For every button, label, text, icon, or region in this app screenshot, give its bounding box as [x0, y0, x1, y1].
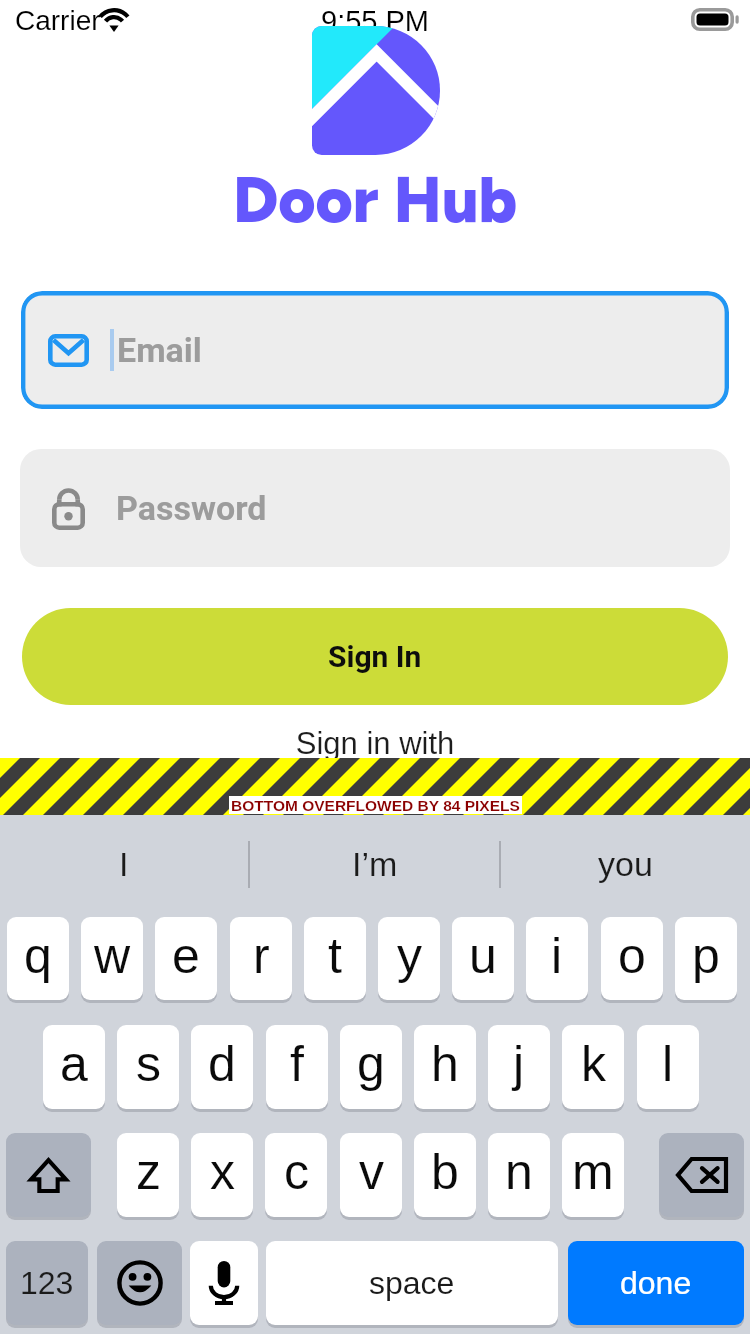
button[interactable]: d	[191, 1025, 253, 1109]
other: Battery	[691, 8, 737, 31]
button[interactable]: y	[378, 917, 440, 1000]
button[interactable]: Shift	[6, 1133, 91, 1217]
other: Wi-Fi	[96, 4, 132, 36]
staticText: Door Hub	[0, 161, 750, 238]
staticText: r	[253, 928, 270, 984]
staticText: h	[431, 1036, 459, 1092]
staticText: k	[581, 1036, 606, 1092]
button[interactable]: u	[452, 917, 514, 1000]
button[interactable]: Email	[21, 291, 729, 409]
staticText: w	[94, 928, 131, 984]
button[interactable]: j	[488, 1025, 550, 1109]
staticText: m	[572, 1144, 614, 1200]
button[interactable]: f	[266, 1025, 328, 1109]
button[interactable]: t	[304, 917, 366, 1000]
staticText: o	[618, 928, 646, 984]
button[interactable]: Password	[20, 449, 730, 567]
staticText: 123	[20, 1265, 74, 1301]
button[interactable]: space	[266, 1241, 558, 1325]
staticText: l	[662, 1036, 674, 1092]
staticText: d	[208, 1036, 236, 1092]
button[interactable]: done	[568, 1241, 744, 1325]
staticText: u	[469, 928, 497, 984]
button[interactable]: k	[562, 1025, 624, 1109]
staticText: c	[284, 1144, 309, 1200]
button[interactable]: z	[117, 1133, 179, 1217]
staticText: n	[505, 1144, 533, 1200]
button[interactable]: q	[7, 917, 69, 1000]
staticText: s	[136, 1036, 161, 1092]
button[interactable]: I’m	[250, 815, 499, 913]
staticText: f	[290, 1036, 304, 1092]
button[interactable]: v	[340, 1133, 402, 1217]
button[interactable]: p	[675, 917, 737, 1000]
staticText: Email	[117, 330, 202, 370]
button[interactable]: Dictate	[190, 1241, 258, 1325]
staticText: Sign In	[328, 639, 422, 674]
staticText: b	[431, 1144, 459, 1200]
button[interactable]: Emoji	[97, 1241, 182, 1325]
button[interactable]: x	[191, 1133, 253, 1217]
button[interactable]: Sign In	[22, 608, 728, 705]
button[interactable]: l	[637, 1025, 699, 1109]
button[interactable]: c	[265, 1133, 327, 1217]
button[interactable]: o	[601, 917, 663, 1000]
staticText: j	[513, 1036, 525, 1092]
staticText: Password	[116, 488, 267, 528]
button[interactable]: a	[43, 1025, 105, 1109]
staticText: I’m	[352, 845, 398, 883]
staticText: Sign in with	[0, 726, 750, 761]
staticText: BOTTOM OVERFLOWED BY 84 PIXELS	[231, 797, 520, 814]
staticText: a	[60, 1036, 88, 1092]
other: Door Hub logo	[312, 26, 440, 155]
staticText: q	[24, 928, 52, 984]
button[interactable]: e	[155, 917, 217, 1000]
button[interactable]: h	[414, 1025, 476, 1109]
button[interactable]: n	[488, 1133, 550, 1217]
staticText: g	[357, 1036, 385, 1092]
button[interactable]: r	[230, 917, 292, 1000]
staticText: x	[210, 1144, 235, 1200]
staticText: Carrier	[15, 5, 101, 36]
staticText: v	[359, 1144, 384, 1200]
staticText: t	[328, 928, 342, 984]
staticText: I	[119, 845, 129, 883]
button[interactable]: Backspace	[659, 1133, 744, 1217]
staticText: e	[172, 928, 200, 984]
button[interactable]: g	[340, 1025, 402, 1109]
button[interactable]: m	[562, 1133, 624, 1217]
button[interactable]: I	[0, 815, 248, 913]
button[interactable]: i	[526, 917, 588, 1000]
staticText: space	[369, 1265, 455, 1301]
staticText: 9:55 PM	[0, 5, 750, 37]
button[interactable]: you	[501, 815, 750, 913]
button[interactable]: Numbers	[6, 1241, 88, 1325]
button[interactable]: w	[81, 917, 143, 1000]
button[interactable]: b	[414, 1133, 476, 1217]
staticText: y	[397, 928, 422, 984]
staticText: done	[620, 1265, 692, 1301]
staticText: you	[598, 845, 653, 883]
staticText: z	[136, 1144, 161, 1200]
button[interactable]: s	[117, 1025, 179, 1109]
staticText: i	[551, 928, 563, 984]
staticText: p	[692, 928, 720, 984]
